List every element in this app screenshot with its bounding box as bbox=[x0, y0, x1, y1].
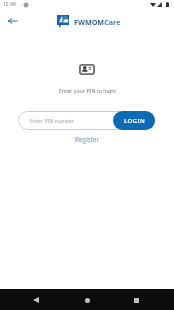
staticText: LOGIN bbox=[124, 116, 145, 124]
button[interactable]: Register bbox=[69, 131, 105, 147]
staticText: 12:48 bbox=[3, 1, 16, 8]
button[interactable]: Recent apps bbox=[126, 290, 146, 310]
staticText: Enter PIN number bbox=[30, 117, 75, 124]
button[interactable]: Enter PIN number bbox=[18, 111, 155, 130]
staticText: Enter your PIN to login bbox=[59, 87, 116, 94]
button[interactable]: Home bbox=[77, 290, 97, 310]
button[interactable]: Back bbox=[4, 13, 20, 29]
button[interactable]: Back bbox=[26, 290, 46, 310]
staticText: Register bbox=[75, 135, 99, 143]
staticText: FWMOMCare bbox=[74, 17, 121, 27]
button[interactable]: LOGIN bbox=[113, 111, 155, 130]
